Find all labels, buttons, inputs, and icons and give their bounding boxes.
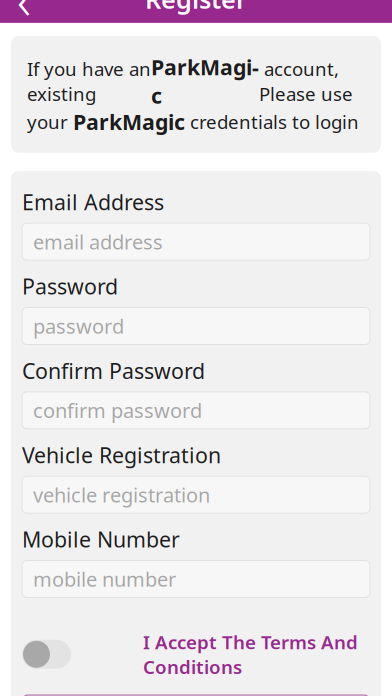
staticText: password (33, 313, 124, 339)
staticText: ParkMagic (73, 107, 185, 136)
staticText: ‹ (17, 0, 31, 34)
button[interactable]: I Accept The Terms And Conditions (143, 629, 358, 679)
staticText: ParkMagic (151, 53, 259, 110)
staticText: email address (33, 228, 163, 255)
staticText: If you have an existing (27, 56, 151, 106)
staticText: Password (22, 272, 118, 300)
button[interactable]: password (22, 307, 370, 344)
button[interactable]: confirm password (22, 392, 370, 429)
button[interactable]: Register (22, 695, 370, 696)
staticText: Register (145, 0, 247, 16)
staticText: credentials to login (185, 109, 359, 134)
staticText: I Accept The Terms And Conditions (143, 629, 358, 679)
staticText: your (27, 109, 73, 134)
button[interactable]: email address (22, 223, 370, 260)
button[interactable]: vehicle registration (22, 476, 370, 513)
staticText: vehicle registration (33, 481, 210, 508)
button[interactable]: Accept terms toggle (22, 640, 71, 669)
staticText: Mobile Number (22, 525, 180, 553)
staticText: Confirm Password (22, 356, 205, 385)
staticText: Email Address (22, 188, 164, 216)
button[interactable]: Back (2, 0, 46, 21)
staticText: confirm password (33, 397, 202, 424)
staticText: Vehicle Registration (22, 441, 221, 469)
button[interactable]: mobile number (22, 560, 370, 597)
staticText: account, Please use (259, 56, 353, 106)
staticText: mobile number (33, 566, 176, 592)
